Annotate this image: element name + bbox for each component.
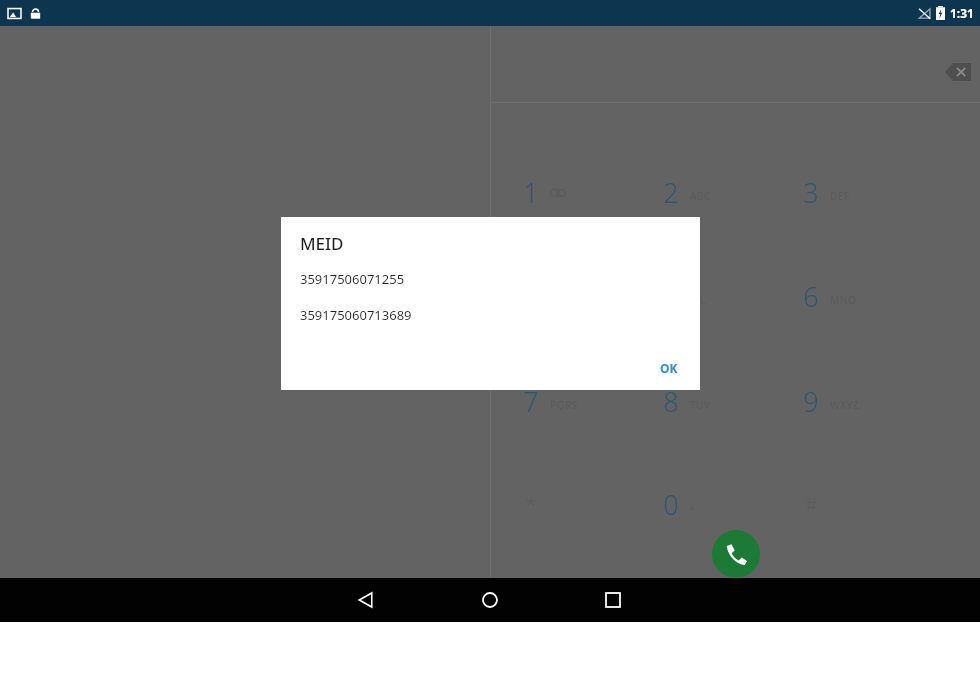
button[interactable]: Call <box>712 530 760 578</box>
button[interactable]: 5 <box>658 270 798 322</box>
staticText: 359175060713689 <box>300 306 412 324</box>
staticText: OK <box>660 360 678 376</box>
button[interactable]: 6 <box>798 270 938 322</box>
button[interactable]: Back <box>342 578 390 622</box>
button[interactable]: Home <box>466 578 514 622</box>
button[interactable]: 0 <box>658 478 798 530</box>
staticText: 0 <box>663 486 679 523</box>
staticText: 8 <box>663 383 679 420</box>
button[interactable]: 8 <box>658 375 798 427</box>
staticText: 1 <box>523 174 539 211</box>
button[interactable]: 3 <box>798 166 938 218</box>
staticText: 1:31 <box>950 5 974 21</box>
staticText: 3 <box>803 174 819 211</box>
staticText: 7 <box>523 383 539 420</box>
staticText: 35917506071255 <box>300 270 405 288</box>
staticText: JKL <box>690 293 707 307</box>
staticText: MEID <box>300 232 344 255</box>
button[interactable]: Recent apps <box>589 578 637 622</box>
button[interactable]: 7 <box>518 375 658 427</box>
button[interactable]: 2 <box>658 166 798 218</box>
button[interactable]: 9 <box>798 375 938 427</box>
staticText: 2 <box>663 174 679 211</box>
button[interactable]: OK <box>646 352 692 384</box>
button[interactable]: 1 <box>518 166 658 218</box>
button[interactable]: Backspace <box>936 50 980 94</box>
staticText: 6 <box>803 278 819 315</box>
staticText: 9 <box>803 383 819 420</box>
